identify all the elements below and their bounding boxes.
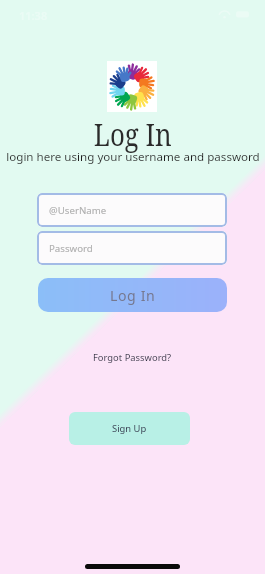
staticText: @UserName (49, 204, 107, 217)
button[interactable]: Log In (38, 278, 227, 312)
button[interactable]: Forgot Password? (87, 348, 178, 367)
other: App logo (107, 61, 157, 112)
staticText: Log In (110, 286, 156, 305)
button[interactable]: Sign Up (69, 412, 190, 445)
button[interactable]: Password (37, 231, 227, 265)
staticText: Forgot Password? (93, 351, 172, 364)
staticText: Log In (94, 113, 172, 155)
staticText: 11:38 (19, 8, 48, 23)
button[interactable]: @UserName (37, 193, 227, 227)
staticText: Password (49, 242, 93, 255)
staticText: login here using your username and passw… (6, 149, 260, 165)
staticText: Sign Up (112, 422, 147, 435)
